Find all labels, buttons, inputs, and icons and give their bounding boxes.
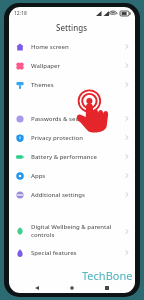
button[interactable]: Special features	[9, 243, 135, 262]
staticText: Themes	[31, 81, 125, 89]
button[interactable]: Recents	[100, 282, 114, 293]
button[interactable]: Wallpaper	[9, 56, 135, 75]
staticText: Special features	[31, 249, 125, 257]
staticText: Home screen	[31, 43, 125, 51]
button[interactable]: Privacy protection	[9, 128, 135, 147]
staticText: Wallpaper	[31, 62, 125, 70]
staticText: Passwords & security	[31, 115, 125, 123]
button[interactable]: Home	[65, 282, 79, 293]
staticText: Additional settings	[31, 191, 125, 199]
button[interactable]: Additional settings	[9, 185, 135, 204]
button[interactable]: Apps	[9, 166, 135, 185]
staticText: Apps	[31, 172, 125, 180]
staticText: Privacy protection	[31, 134, 125, 142]
staticText: TechBone	[82, 268, 133, 282]
button[interactable]: Battery & performance	[9, 147, 135, 166]
staticText: Settings	[56, 22, 88, 33]
button[interactable]: Digital Wellbeing & parental controls	[9, 219, 135, 243]
button[interactable]: Passwords & security	[9, 109, 135, 128]
button[interactable]: Home screen	[9, 37, 135, 56]
staticText: 12:18	[14, 10, 27, 17]
staticText: Digital Wellbeing & parental controls	[31, 223, 125, 239]
button[interactable]: Themes	[9, 75, 135, 94]
staticText: Battery & performance	[31, 153, 125, 161]
button[interactable]: Back	[30, 282, 44, 293]
